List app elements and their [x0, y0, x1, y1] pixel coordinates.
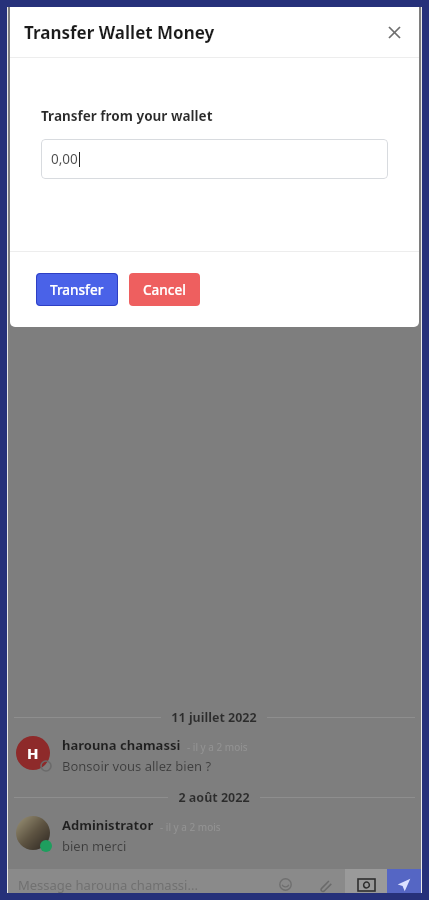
staticText: Transfer Wallet Money: [24, 21, 215, 44]
button[interactable]: Attach file: [305, 869, 345, 900]
button[interactable]: Close: [379, 17, 409, 47]
staticText: 0,00: [51, 150, 78, 168]
staticText: Administrator: [62, 816, 154, 834]
button[interactable]: Transfer: [36, 273, 118, 306]
staticText: Cancel: [143, 281, 186, 299]
staticText: 2 août 2022: [178, 789, 250, 806]
button[interactable]: Administrator: [8, 816, 421, 855]
button[interactable]: 0,00: [41, 139, 388, 179]
button[interactable]: Send money: [345, 869, 387, 900]
button[interactable]: Cancel: [129, 273, 200, 306]
button[interactable]: Emoji: [265, 869, 305, 900]
button[interactable]: Message harouna chamassi...: [8, 869, 265, 900]
button[interactable]: Send: [387, 869, 421, 900]
staticText: H: [27, 743, 39, 763]
staticText: 11 juillet 2022: [171, 709, 257, 726]
staticText: - il y a 2 mois: [187, 740, 248, 754]
staticText: harouna chamassi: [62, 736, 181, 754]
staticText: - il y a 2 mois: [160, 820, 221, 834]
staticText: Message harouna chamassi...: [18, 876, 198, 894]
staticText: Bonsoir vous allez bien ?: [62, 757, 212, 775]
staticText: bien merci: [62, 837, 127, 855]
staticText: Transfer: [50, 281, 104, 299]
staticText: Transfer from your wallet: [41, 107, 213, 125]
button[interactable]: H: [8, 736, 421, 775]
